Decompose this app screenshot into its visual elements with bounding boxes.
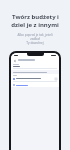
- button[interactable]: Back: [13, 59, 16, 62]
- button[interactable]: [11, 63, 59, 70]
- staticText: Ty dowolnej: [26, 41, 44, 45]
- button[interactable]: Remove recipient: [54, 77, 57, 80]
- button[interactable]: Back: [11, 57, 59, 63]
- staticText: Albo poproś je tak, jeżeli: [17, 33, 53, 37]
- staticText: Twórz budżety i: [12, 13, 59, 21]
- button[interactable]: Remove recipient: [13, 77, 57, 80]
- staticText: dziel je z innymi: [11, 21, 59, 29]
- button[interactable]: Add: [13, 84, 28, 86]
- staticText: zadbał: [30, 37, 40, 41]
